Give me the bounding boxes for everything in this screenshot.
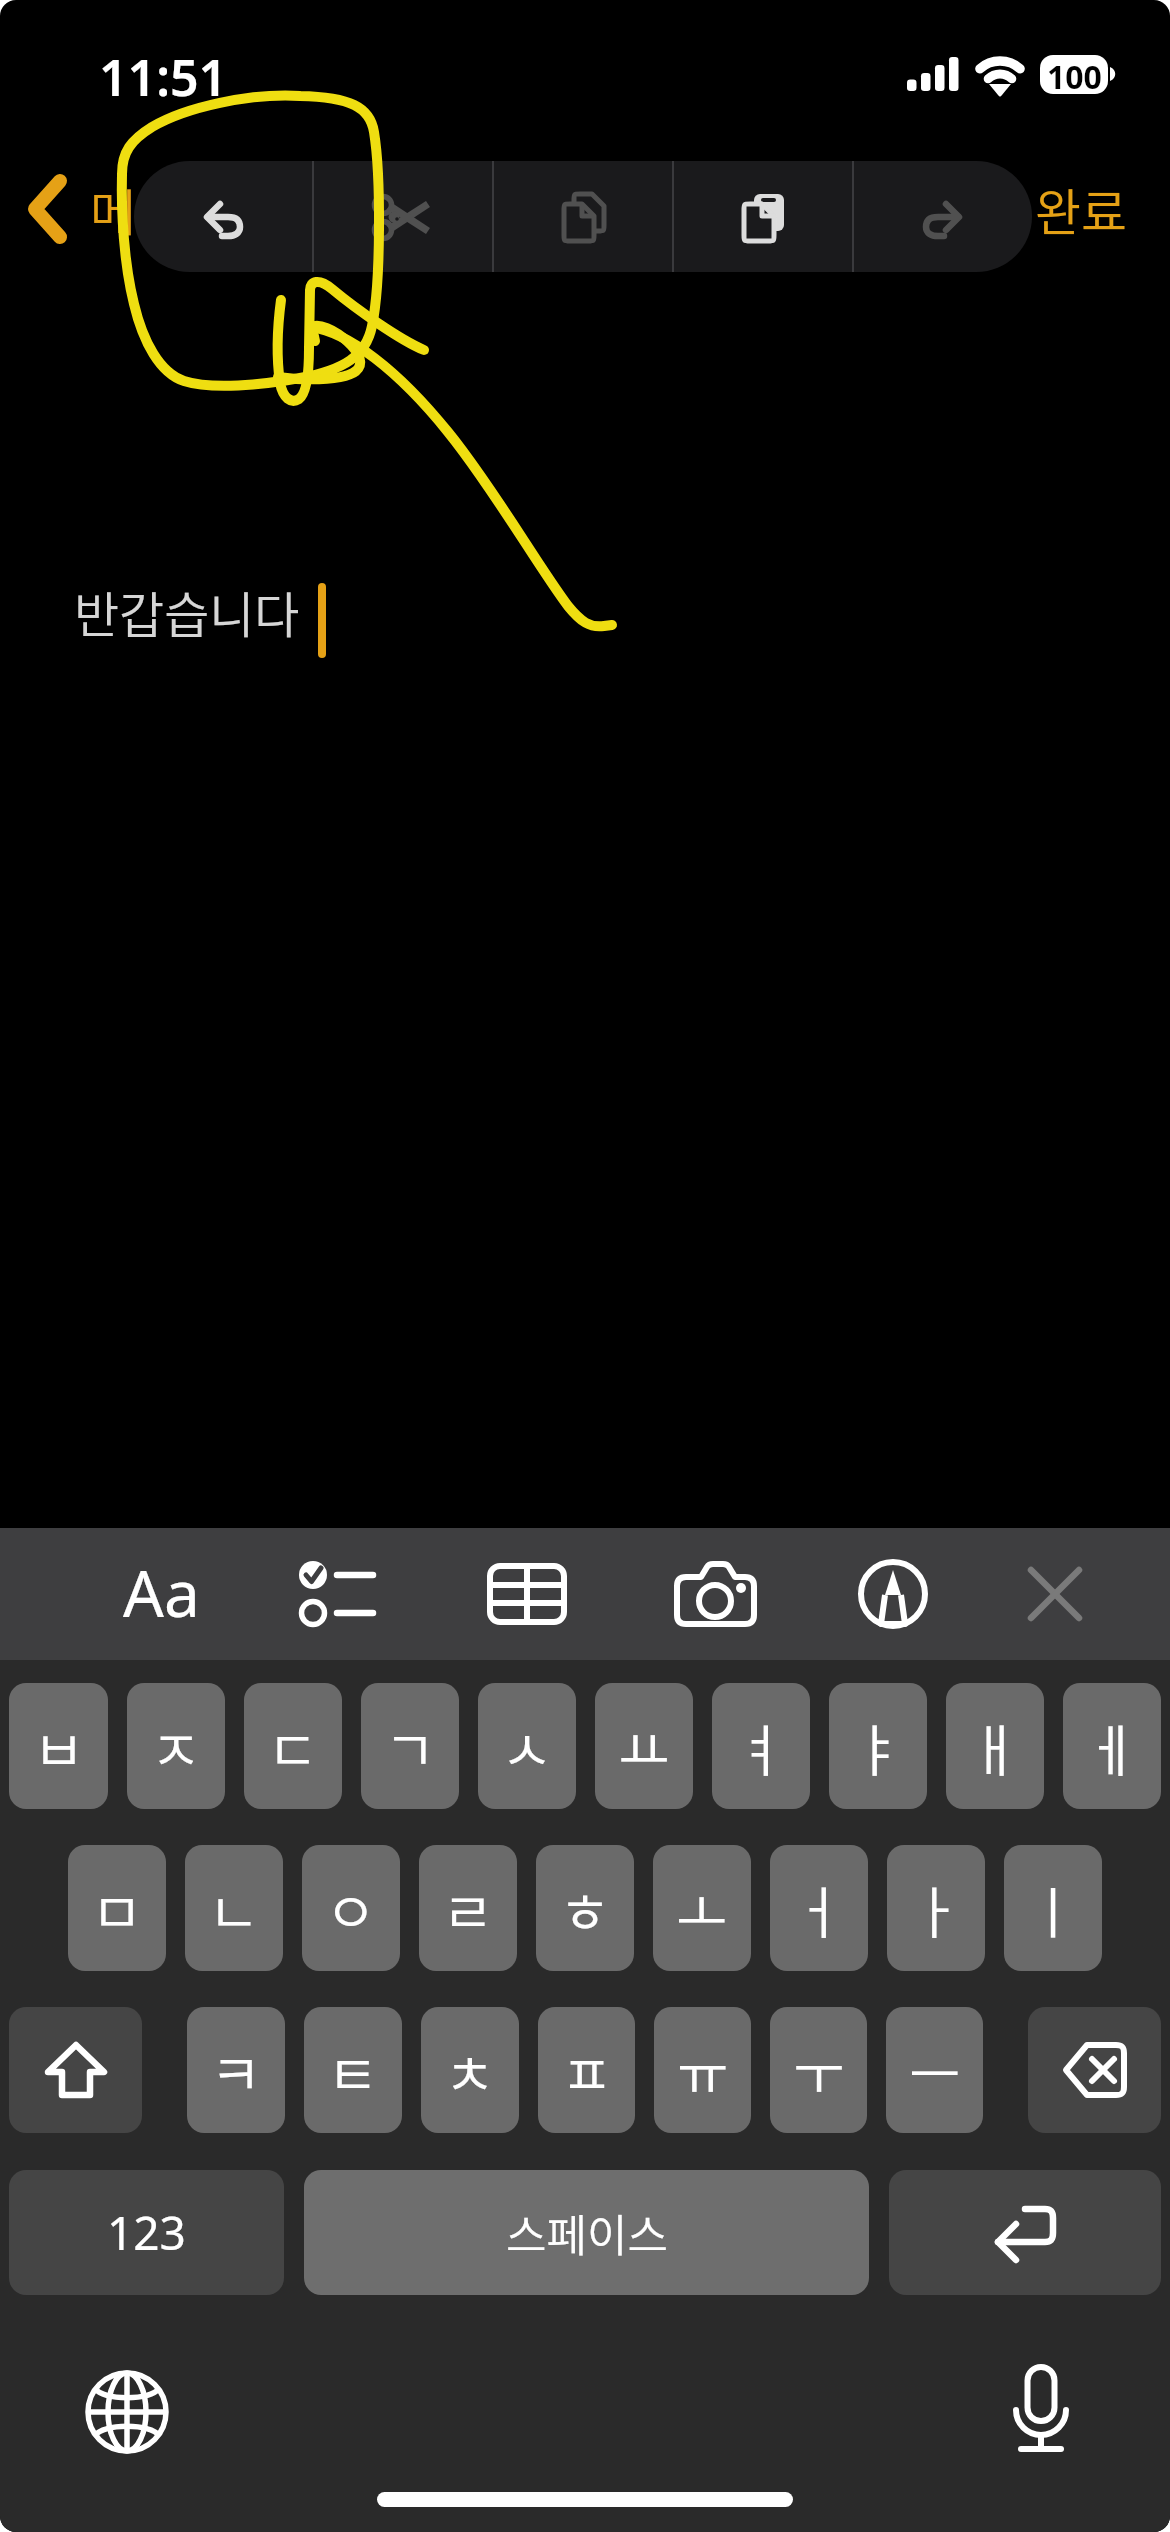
button[interactable]: Paste <box>674 161 852 272</box>
staticText: 스페이스 <box>506 2201 668 2265</box>
staticText: ㅡ <box>909 2030 961 2111</box>
button[interactable]: ㅐ <box>946 1683 1044 1809</box>
button[interactable]: ㅓ <box>770 1845 868 1971</box>
button[interactable]: Return <box>889 2170 1161 2295</box>
button[interactable]: ㅡ <box>886 2007 983 2133</box>
button[interactable]: ㄷ <box>244 1683 342 1809</box>
staticText: ㅂ <box>33 1706 85 1787</box>
button[interactable]: ㅊ <box>421 2007 519 2133</box>
button[interactable]: ㅣ <box>1004 1845 1102 1971</box>
staticText: 11:51 <box>99 43 228 111</box>
button[interactable]: Text format <box>99 1528 223 1660</box>
staticText: ㅏ <box>910 1868 962 1949</box>
button[interactable]: ㅠ <box>654 2007 751 2133</box>
button[interactable]: ㅁ <box>68 1845 166 1971</box>
button[interactable]: Cut <box>314 161 492 272</box>
button[interactable]: 메모 <box>28 167 182 251</box>
button[interactable]: ㅍ <box>538 2007 635 2133</box>
button[interactable]: 스페이스 <box>304 2170 869 2295</box>
staticText: ㅣ <box>1027 1868 1079 1949</box>
button[interactable]: ㅑ <box>829 1683 927 1809</box>
staticText: ㅗ <box>676 1868 728 1949</box>
button[interactable]: Copy <box>494 161 672 272</box>
staticText: 123 <box>107 2201 186 2264</box>
staticText: ㅊ <box>444 2030 496 2111</box>
staticText: ㅜ <box>793 2030 845 2111</box>
staticText: 100 <box>1047 55 1102 94</box>
button[interactable]: Dictation <box>1001 2362 1081 2456</box>
button[interactable]: ㅔ <box>1063 1683 1161 1809</box>
staticText: ㅠ <box>677 2030 729 2111</box>
staticText: ㄷ <box>267 1706 319 1787</box>
button[interactable]: Undo <box>134 161 312 272</box>
staticText: ㅑ <box>852 1706 904 1787</box>
staticText: ㅅ <box>501 1706 553 1787</box>
staticText: ㅍ <box>561 2030 613 2111</box>
button[interactable]: Shift <box>9 2007 142 2133</box>
staticText: ㅕ <box>735 1706 787 1787</box>
button[interactable]: Close <box>993 1528 1117 1660</box>
staticText: ㅈ <box>150 1706 202 1787</box>
staticText: 반갑습니다 <box>74 576 300 647</box>
staticText: ㅁ <box>91 1868 143 1949</box>
button[interactable]: ㅇ <box>302 1845 400 1971</box>
button[interactable]: Table <box>465 1528 589 1660</box>
button[interactable]: 완료 <box>1035 167 1127 251</box>
staticText: 완료 <box>1035 173 1127 245</box>
button[interactable]: ㄱ <box>361 1683 459 1809</box>
button[interactable]: Redo <box>854 161 1032 272</box>
button[interactable]: ㄹ <box>419 1845 517 1971</box>
staticText: ㄱ <box>384 1706 436 1787</box>
button[interactable]: ㅎ <box>536 1845 634 1971</box>
button[interactable]: ㅅ <box>478 1683 576 1809</box>
staticText: ㅇ <box>325 1868 377 1949</box>
button[interactable]: ㅏ <box>887 1845 985 1971</box>
button[interactable]: Checklist <box>278 1528 402 1660</box>
staticText: ㅔ <box>1086 1706 1138 1787</box>
staticText: Aa <box>123 1549 200 1636</box>
button[interactable]: Change keyboard <box>85 2370 169 2454</box>
button[interactable]: Markup <box>831 1528 955 1660</box>
staticText: 메모 <box>90 173 182 245</box>
button[interactable]: ㅗ <box>653 1845 751 1971</box>
staticText: ㄹ <box>442 1868 494 1949</box>
button[interactable]: ㄴ <box>185 1845 283 1971</box>
staticText: ㅐ <box>969 1706 1021 1787</box>
staticText: ㄴ <box>208 1868 260 1949</box>
button[interactable]: 123 <box>9 2170 284 2295</box>
button[interactable]: ㅛ <box>595 1683 693 1809</box>
button[interactable]: ㅈ <box>127 1683 225 1809</box>
button[interactable]: ㅂ <box>9 1683 108 1809</box>
button[interactable]: ㅋ <box>187 2007 285 2133</box>
staticText: ㅓ <box>793 1868 845 1949</box>
button[interactable]: Backspace <box>1028 2007 1161 2133</box>
staticText: ㅌ <box>327 2030 379 2111</box>
button[interactable]: ㅌ <box>304 2007 402 2133</box>
button[interactable]: Camera <box>653 1528 777 1660</box>
button[interactable]: ㅜ <box>770 2007 867 2133</box>
staticText: ㅎ <box>559 1868 611 1949</box>
staticText: ㅛ <box>618 1706 670 1787</box>
staticText: ㅋ <box>210 2030 262 2111</box>
button[interactable]: ㅕ <box>712 1683 810 1809</box>
